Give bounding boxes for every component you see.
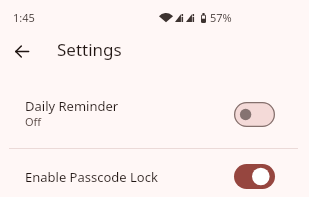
button[interactable]: Enable Passcode Lock on [234, 164, 275, 189]
staticText: Settings [57, 38, 122, 61]
button[interactable]: Enable Passcode Lock [0, 148, 309, 197]
staticText: Daily Reminder [25, 97, 119, 115]
staticText: 1:45 [13, 10, 35, 25]
staticText: 57% [210, 10, 232, 25]
staticText: Off [25, 114, 42, 129]
button[interactable]: Daily Reminder [0, 80, 309, 148]
button[interactable]: Daily Reminder off [234, 102, 275, 127]
button[interactable]: Back [8, 37, 36, 65]
staticText: Enable Passcode Lock [25, 168, 158, 186]
